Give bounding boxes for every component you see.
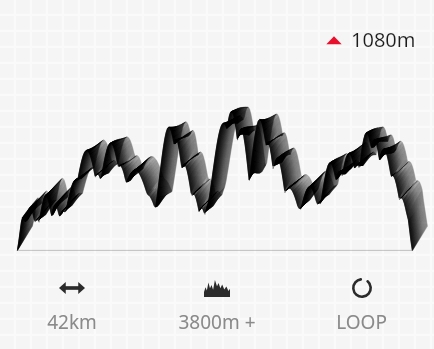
button[interactable]: 1080m — [322, 22, 420, 57]
other: Distance — [59, 277, 85, 299]
staticText: 1080m — [351, 26, 416, 53]
staticText: 42km — [47, 309, 97, 335]
staticText: 3800m + — [178, 309, 256, 335]
button[interactable]: Loop route — [289, 273, 434, 339]
button[interactable]: Elevation gain — [144, 273, 289, 339]
other: Elevation gain — [204, 277, 230, 299]
other: Loop route — [352, 277, 372, 299]
button[interactable]: Distance — [0, 273, 144, 339]
staticText: LOOP — [336, 309, 387, 335]
